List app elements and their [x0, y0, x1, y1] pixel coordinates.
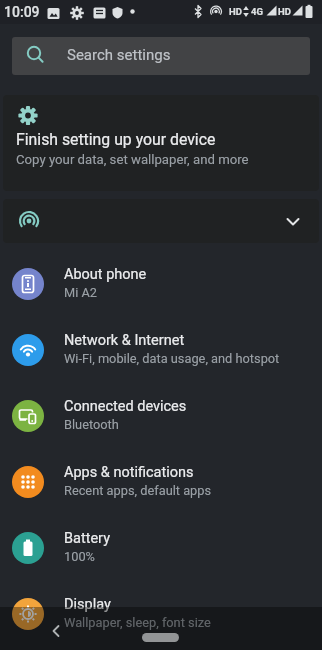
staticText: Copy your data, set wallpaper, and more	[16, 152, 249, 167]
staticText: 10:09	[4, 4, 40, 20]
staticText: Display	[64, 596, 111, 613]
staticText: Connected devices	[64, 398, 187, 415]
staticText: Wallpaper, sleep, font size	[64, 615, 211, 630]
staticText: Search settings	[67, 46, 171, 64]
staticText: Bluetooth	[64, 417, 119, 432]
staticText: HD	[278, 6, 291, 17]
staticText: Finish setting up your device	[16, 130, 216, 149]
staticText: Apps & notifications	[64, 464, 194, 481]
staticText: About phone	[64, 266, 147, 283]
staticText: Network & Internet	[64, 332, 185, 349]
staticText: 4G	[251, 6, 263, 17]
staticText: Wi-Fi, mobile, data usage, and hotspot	[64, 351, 280, 366]
staticText: Mi A2	[64, 285, 97, 300]
staticText: Recent apps, default apps	[64, 483, 212, 498]
staticText: 100%	[64, 549, 95, 564]
staticText: HD	[229, 6, 242, 17]
staticText: Battery	[64, 530, 110, 547]
